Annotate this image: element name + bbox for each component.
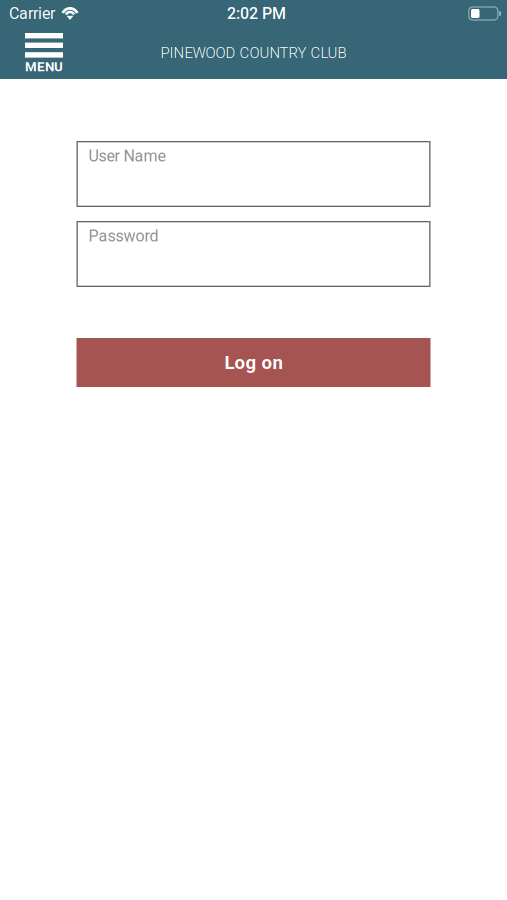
button[interactable]: Log on bbox=[76, 338, 430, 387]
staticText: PINEWOOD COUNTRY CLUB bbox=[160, 44, 346, 62]
staticText: Log on bbox=[224, 352, 282, 373]
button[interactable]: Menu bbox=[0, 27, 79, 79]
staticText: Carrier bbox=[9, 4, 55, 23]
staticText: MENU bbox=[25, 59, 63, 75]
staticText: 2:02 PM bbox=[227, 4, 286, 23]
button[interactable]: User Name bbox=[76, 141, 430, 207]
button[interactable]: Password bbox=[76, 221, 430, 287]
staticText: User Name bbox=[88, 147, 165, 165]
staticText: Password bbox=[88, 227, 158, 245]
